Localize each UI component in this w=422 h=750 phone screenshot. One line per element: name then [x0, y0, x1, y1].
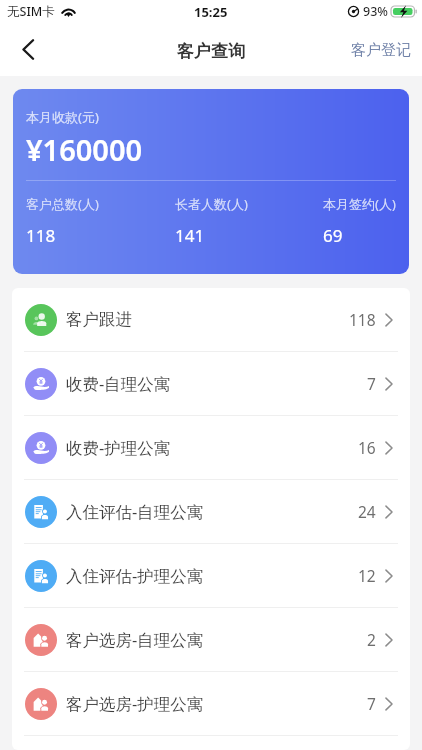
staticText: 16	[358, 437, 376, 458]
button[interactable]: 客户选房-护理公寓	[12, 672, 410, 735]
button[interactable]: 客户跟进	[12, 288, 410, 351]
staticText: 长者人数(人)	[175, 195, 248, 213]
staticText: ¥160000	[26, 130, 143, 169]
staticText: 收费-护理公寓	[66, 436, 171, 459]
staticText: 入住评估-护理公寓	[66, 564, 204, 587]
staticText: 客户查询	[177, 41, 245, 62]
button[interactable]: Back	[0, 28, 50, 76]
staticText: 客户总数(人)	[26, 195, 99, 213]
staticText: 118	[349, 309, 376, 330]
staticText: 7	[367, 693, 376, 714]
staticText: 客户跟进	[66, 309, 132, 330]
staticText: 2	[367, 629, 376, 650]
button[interactable]: 收费-自理公寓	[12, 352, 410, 415]
staticText: 118	[26, 224, 56, 247]
staticText: 93%	[363, 3, 388, 20]
button[interactable]: 收费-护理公寓	[12, 416, 410, 479]
staticText: 7	[367, 373, 376, 394]
staticText: 12	[358, 565, 376, 586]
staticText: 客户选房-自理公寓	[66, 628, 204, 651]
button[interactable]: 入住评估-护理公寓	[12, 544, 410, 607]
staticText: 客户登记	[351, 41, 411, 60]
staticText: 无SIM卡	[7, 3, 55, 20]
button[interactable]: 客户选房-自理公寓	[12, 608, 410, 671]
staticText: 收费-自理公寓	[66, 372, 171, 395]
staticText: 本月收款(元)	[26, 108, 99, 126]
staticText: 客户选房-护理公寓	[66, 692, 204, 715]
staticText: 24	[358, 501, 376, 522]
button[interactable]: 客户登记	[335, 31, 422, 74]
staticText: 入住评估-自理公寓	[66, 500, 204, 523]
staticText: 69	[323, 224, 343, 247]
staticText: 本月签约(人)	[323, 195, 396, 213]
button[interactable]: 入住评估-自理公寓	[12, 480, 410, 543]
staticText: 141	[175, 224, 205, 247]
staticText: 15:25	[194, 3, 228, 21]
